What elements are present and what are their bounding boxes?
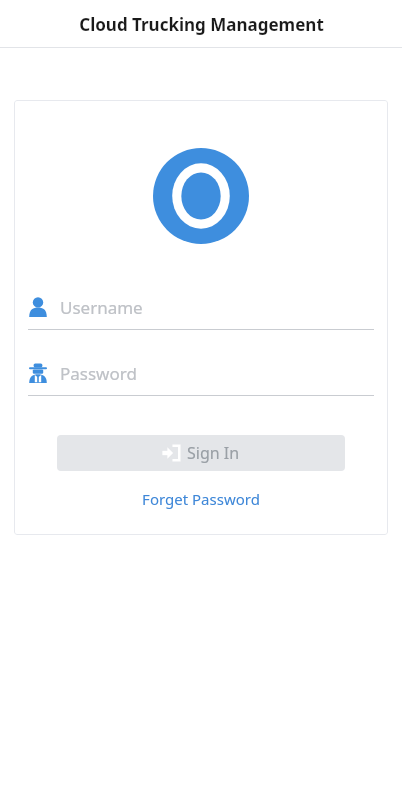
staticText: Password: [60, 362, 137, 385]
staticText: Sign In: [187, 442, 240, 464]
other: Password: [28, 363, 48, 383]
staticText: Cloud Trucking Management: [79, 13, 324, 36]
button[interactable]: Sign In: [57, 435, 345, 471]
staticText: Username: [60, 296, 143, 319]
other: Username: [28, 297, 48, 317]
staticText: Forget Password: [142, 489, 260, 509]
button[interactable]: Forget Password: [14, 489, 388, 509]
button[interactable]: Username: [28, 292, 374, 330]
button[interactable]: Password: [28, 358, 374, 396]
